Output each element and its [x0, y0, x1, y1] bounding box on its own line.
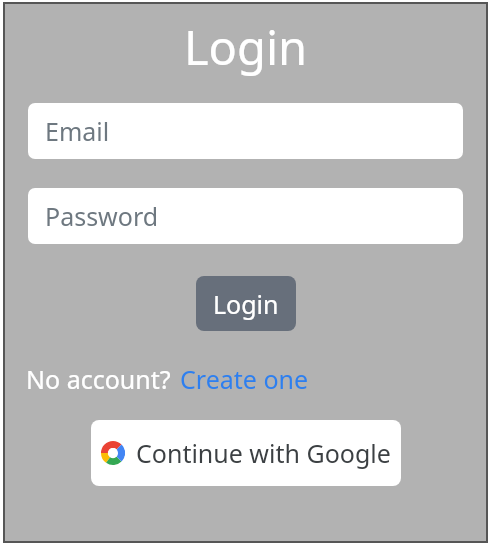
button[interactable]: Password	[28, 188, 463, 244]
staticText: Create one	[180, 362, 309, 396]
button[interactable]: Login	[196, 276, 296, 331]
button[interactable]: Create one	[180, 362, 309, 396]
staticText: Continue with Google	[136, 436, 391, 470]
button[interactable]: Email	[28, 103, 463, 159]
staticText: Login	[5, 15, 486, 79]
staticText: Login	[213, 287, 279, 321]
staticText: No account?	[26, 362, 171, 396]
other: Google logo	[101, 441, 125, 465]
staticText: Password	[45, 199, 159, 233]
button[interactable]: Google logo	[91, 420, 401, 486]
staticText: Email	[45, 114, 110, 148]
